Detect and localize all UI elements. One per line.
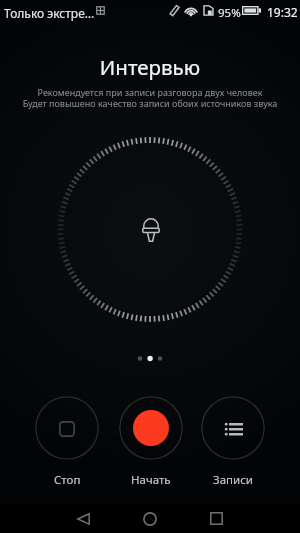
staticText: Стоп — [54, 472, 81, 488]
staticText: 95% — [218, 5, 241, 21]
staticText: Только экстре… — [4, 5, 95, 21]
button[interactable]: Back — [63, 504, 103, 533]
button[interactable]: Recents — [196, 504, 236, 533]
button[interactable]: Recordings — [201, 396, 265, 460]
button[interactable]: Start recording — [119, 396, 183, 460]
staticText: Рекомендуется при записи разговора двух … — [0, 86, 300, 98]
button[interactable]: Home — [130, 504, 170, 533]
staticText: Интервью — [0, 53, 300, 81]
staticText: 19:32 — [267, 4, 298, 20]
button[interactable]: Stop — [35, 396, 99, 460]
staticText: Начать — [131, 472, 171, 488]
staticText: Записи — [213, 472, 253, 488]
staticText: Будет повышено качество записи обоих ист… — [0, 97, 300, 109]
